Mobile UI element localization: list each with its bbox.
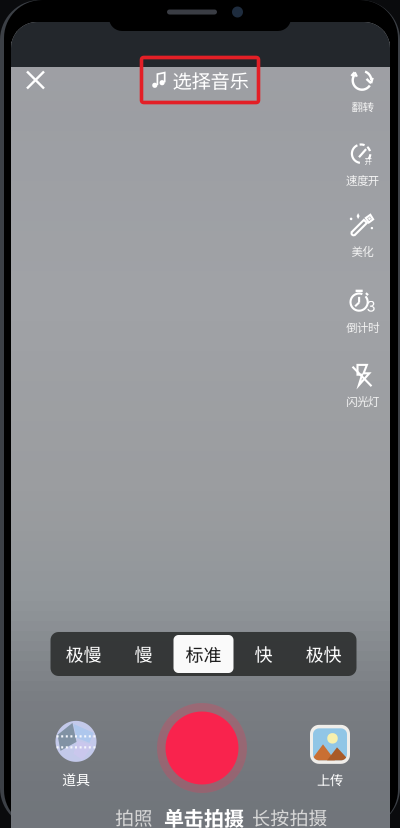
staticText: 选择音乐 <box>172 66 248 94</box>
staticText: 闪光灯 <box>346 393 379 409</box>
button[interactable]: 闪光灯 <box>335 362 389 408</box>
staticText: 道具 <box>62 769 90 789</box>
staticText: 拍照 <box>115 803 153 828</box>
staticText: 3 <box>366 297 375 315</box>
button[interactable]: 慢 <box>113 635 173 673</box>
button[interactable]: 3 <box>335 288 389 334</box>
staticText: 美化 <box>351 243 373 259</box>
staticText: 快 <box>254 641 272 667</box>
staticText: 长按拍摄 <box>251 803 327 828</box>
staticText: 开 <box>365 156 372 166</box>
staticText: 倒计时 <box>346 319 379 335</box>
staticText: 上传 <box>317 770 343 789</box>
button[interactable]: 极快 <box>293 635 353 673</box>
button[interactable]: 道具 <box>41 721 111 789</box>
staticText: 速度开 <box>346 172 379 188</box>
button[interactable]: 上传 <box>295 723 365 791</box>
button[interactable]: 美化 <box>335 212 389 258</box>
staticText: 标准 <box>185 641 221 667</box>
button[interactable]: 长按拍摄 <box>249 801 329 828</box>
button[interactable]: Close <box>12 57 58 103</box>
button[interactable]: 拍照 <box>106 801 162 828</box>
button[interactable]: 选择音乐 <box>141 57 258 102</box>
button[interactable]: 极慢 <box>53 635 113 673</box>
staticText: 极慢 <box>65 641 101 667</box>
staticText: 翻转 <box>351 98 373 115</box>
staticText: 单击拍摄 <box>164 802 244 828</box>
staticText: 慢 <box>134 641 152 667</box>
button[interactable]: 标准 <box>173 635 233 673</box>
button[interactable]: 快 <box>233 635 293 673</box>
button[interactable]: 开 <box>335 141 389 187</box>
staticText: 极快 <box>305 641 341 667</box>
button[interactable]: 翻转 <box>335 67 389 113</box>
button[interactable]: 单击拍摄 <box>164 801 244 828</box>
button[interactable]: Record <box>154 700 250 796</box>
